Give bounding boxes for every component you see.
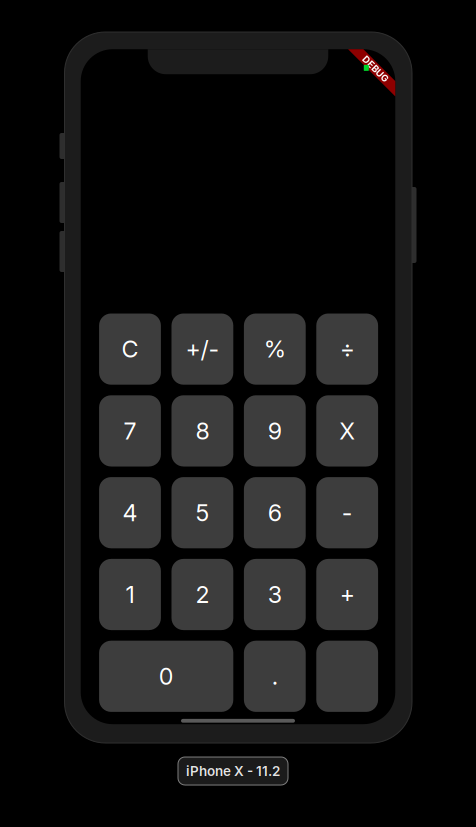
staticText: 4 xyxy=(122,499,137,527)
staticText: 2 xyxy=(195,580,209,609)
staticText: C xyxy=(121,335,138,363)
button[interactable]: 6 xyxy=(244,477,306,548)
staticText: 8 xyxy=(195,417,209,445)
staticText: X xyxy=(339,417,355,445)
staticText: ÷ xyxy=(340,335,355,363)
button[interactable]: 0 xyxy=(99,641,233,712)
staticText: 5 xyxy=(195,499,209,527)
button[interactable]: 3 xyxy=(244,559,306,630)
staticText: DEBUG xyxy=(359,63,392,75)
button[interactable]: 7 xyxy=(99,395,161,466)
button[interactable]: - xyxy=(316,477,378,548)
button[interactable]: iPhone X - 11.2 xyxy=(178,757,288,785)
staticText: iPhone X - 11.2 xyxy=(186,763,280,779)
button[interactable]: 2 xyxy=(171,559,233,630)
button[interactable]: % xyxy=(244,313,306,385)
button[interactable]: X xyxy=(316,395,378,466)
button[interactable] xyxy=(316,641,378,712)
staticText: 3 xyxy=(268,580,282,609)
button[interactable]: 9 xyxy=(244,395,306,466)
button[interactable]: . xyxy=(244,641,306,712)
staticText: 1 xyxy=(125,580,134,609)
button[interactable]: C xyxy=(99,313,161,385)
button[interactable]: +/- xyxy=(171,313,233,385)
staticText: +/- xyxy=(185,335,219,363)
button[interactable]: + xyxy=(316,559,378,630)
staticText: 9 xyxy=(268,417,282,445)
staticText: - xyxy=(342,499,353,527)
staticText: . xyxy=(272,662,278,690)
staticText: % xyxy=(264,335,286,363)
button[interactable]: ÷ xyxy=(316,313,378,385)
button[interactable]: 8 xyxy=(171,395,233,466)
button[interactable]: 5 xyxy=(171,477,233,548)
staticText: 7 xyxy=(123,417,136,445)
staticText: 6 xyxy=(268,499,282,527)
staticText: 0 xyxy=(159,662,174,690)
button[interactable]: 1 xyxy=(99,559,161,630)
staticText: + xyxy=(340,580,355,609)
button[interactable]: 4 xyxy=(99,477,161,548)
